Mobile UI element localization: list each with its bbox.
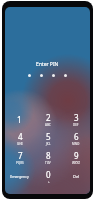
staticText: 2 xyxy=(46,112,51,123)
staticText: TUV xyxy=(45,161,51,165)
staticText: GHI xyxy=(17,142,23,146)
button[interactable]: 9 xyxy=(62,148,90,167)
staticText: JKL xyxy=(46,142,51,146)
staticText: Del xyxy=(73,174,80,179)
staticText: 1 xyxy=(17,114,22,125)
button[interactable]: Delete xyxy=(62,167,90,186)
staticText: 3 xyxy=(74,112,79,123)
button[interactable]: 4 xyxy=(5,129,34,148)
staticText: Enter PIN xyxy=(36,61,59,68)
staticText: PQRS xyxy=(16,161,24,165)
button[interactable]: 8 xyxy=(34,148,62,167)
button[interactable]: 0 xyxy=(34,167,62,186)
staticText: 7 xyxy=(18,150,23,161)
staticText: 0 xyxy=(46,169,51,180)
button[interactable]: 2 xyxy=(34,110,62,129)
staticText: 5 xyxy=(46,131,51,142)
button[interactable]: Emergency xyxy=(5,167,34,186)
button[interactable]: 5 xyxy=(34,129,62,148)
staticText: WXYZ xyxy=(72,161,80,165)
button[interactable]: 7 xyxy=(5,148,34,167)
staticText: ABC xyxy=(45,123,51,127)
button[interactable]: 6 xyxy=(62,129,90,148)
button[interactable]: 1 xyxy=(5,110,34,129)
staticText: 9 xyxy=(74,150,79,161)
staticText: 6 xyxy=(74,131,79,142)
staticText: DEF xyxy=(73,123,79,127)
staticText: MNO xyxy=(72,142,80,146)
staticText: 8 xyxy=(46,150,51,161)
staticText: + xyxy=(48,180,50,184)
staticText: 4 xyxy=(18,131,23,142)
staticText: Emergency xyxy=(10,174,29,179)
button[interactable]: 3 xyxy=(62,110,90,129)
